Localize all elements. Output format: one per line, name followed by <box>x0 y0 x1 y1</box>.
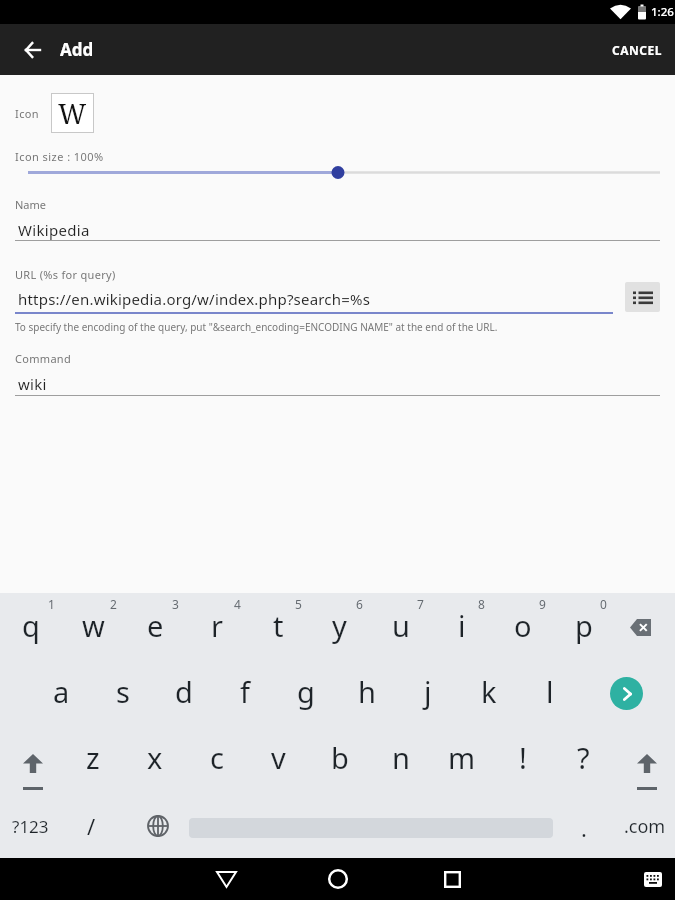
button[interactable]: q <box>0 593 62 659</box>
staticText: m <box>448 738 476 777</box>
button[interactable]: i <box>431 593 492 659</box>
staticText: a <box>53 672 70 711</box>
staticText: b <box>331 738 349 777</box>
staticText: 2 <box>110 596 117 612</box>
staticText: z <box>86 738 100 777</box>
staticText: u <box>392 606 410 645</box>
button[interactable]: o <box>492 593 553 659</box>
button[interactable] <box>122 791 183 857</box>
staticText: h <box>358 672 376 711</box>
button[interactable]: m <box>431 725 492 791</box>
button[interactable]: ?123 <box>0 791 61 857</box>
staticText: ? <box>577 738 590 777</box>
staticText: 1:26 <box>651 4 674 20</box>
staticText: Add <box>60 38 94 61</box>
button[interactable]: p <box>553 593 614 659</box>
staticText: To specify the encoding of the query, pu… <box>15 320 498 334</box>
button[interactable]: t <box>248 593 309 659</box>
staticText: W <box>58 95 87 132</box>
button[interactable] <box>610 677 643 710</box>
button[interactable]: W <box>51 93 94 133</box>
staticText: l <box>546 672 554 711</box>
button[interactable]: c <box>186 725 248 791</box>
staticText: f <box>240 672 250 711</box>
button[interactable] <box>202 858 250 900</box>
staticText: c <box>210 738 224 777</box>
staticText: n <box>392 738 410 777</box>
button[interactable]: g <box>275 659 336 725</box>
staticText: Wikipedia <box>18 220 90 240</box>
staticText: o <box>514 606 532 645</box>
staticText: 0 <box>600 596 607 612</box>
staticText: Name <box>15 197 47 212</box>
button[interactable]: w <box>62 593 124 659</box>
staticText: i <box>458 606 466 645</box>
button[interactable]: l <box>519 659 580 725</box>
staticText: v <box>271 738 286 777</box>
staticText: 8 <box>478 596 485 612</box>
button[interactable] <box>625 282 660 312</box>
button[interactable]: CANCEL <box>599 24 675 75</box>
button[interactable]: v <box>248 725 309 791</box>
button[interactable]: x <box>124 725 186 791</box>
button[interactable]: z <box>62 725 124 791</box>
button[interactable]: e <box>124 593 186 659</box>
staticText: https://en.wikipedia.org/w/index.php?sea… <box>18 289 371 309</box>
staticText: x <box>147 738 163 777</box>
staticText: p <box>575 606 593 645</box>
button[interactable]: ? <box>553 725 614 791</box>
staticText: k <box>481 672 497 711</box>
staticText: s <box>116 672 130 711</box>
button[interactable] <box>614 725 675 791</box>
button[interactable] <box>0 725 62 791</box>
staticText: d <box>175 672 193 711</box>
staticText: ! <box>519 738 527 777</box>
staticText: t <box>273 606 284 645</box>
button[interactable] <box>314 858 362 900</box>
button[interactable]: s <box>92 659 153 725</box>
staticText: j <box>424 672 432 711</box>
button[interactable]: f <box>214 659 275 725</box>
button[interactable]: . <box>553 791 614 857</box>
staticText: 3 <box>172 596 179 612</box>
staticText: 1 <box>48 596 55 612</box>
button[interactable] <box>183 791 553 857</box>
button[interactable]: ! <box>492 725 553 791</box>
staticText: 5 <box>295 596 302 612</box>
button[interactable] <box>28 164 660 180</box>
button[interactable]: n <box>370 725 431 791</box>
staticText: 7 <box>417 596 424 612</box>
staticText: r <box>211 606 223 645</box>
staticText: Icon <box>15 106 40 121</box>
staticText: ?123 <box>12 815 49 838</box>
button[interactable]: a <box>31 659 92 725</box>
button[interactable] <box>9 26 57 74</box>
button[interactable]: u <box>370 593 431 659</box>
staticText: Command <box>15 351 72 366</box>
staticText: . <box>581 813 587 843</box>
button[interactable]: r <box>186 593 248 659</box>
staticText: g <box>297 672 315 711</box>
staticText: .com <box>624 814 666 839</box>
staticText: 9 <box>539 596 546 612</box>
button[interactable]: y <box>309 593 370 659</box>
button[interactable]: j <box>397 659 458 725</box>
button[interactable]: b <box>309 725 370 791</box>
button[interactable]: .com <box>614 791 675 857</box>
staticText: / <box>87 811 96 841</box>
staticText: 6 <box>356 596 363 612</box>
staticText: 4 <box>234 596 241 612</box>
staticText: e <box>147 606 164 645</box>
button[interactable] <box>614 593 675 659</box>
staticText: URL (%s for query) <box>15 267 116 282</box>
button[interactable] <box>428 858 476 900</box>
button[interactable]: k <box>458 659 519 725</box>
staticText: q <box>22 606 40 645</box>
button[interactable]: h <box>336 659 397 725</box>
staticText: w <box>82 606 105 645</box>
staticText: wiki <box>18 374 47 394</box>
button[interactable]: d <box>153 659 214 725</box>
button[interactable]: / <box>61 791 122 857</box>
button[interactable] <box>637 858 669 900</box>
staticText: CANCEL <box>612 42 662 58</box>
